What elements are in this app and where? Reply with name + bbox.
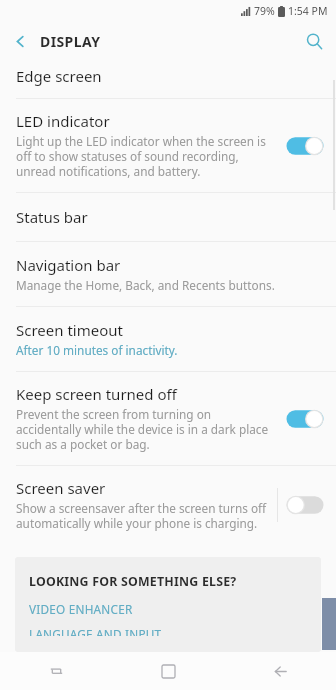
staticText: Status bar — [16, 207, 88, 227]
button[interactable]: Status bar — [0, 193, 336, 241]
staticText: DISPLAY — [40, 32, 101, 51]
staticText: Show a screensaver after the screen turn… — [16, 500, 269, 532]
button[interactable]: Back — [0, 22, 40, 60]
staticText: Edge screen — [16, 66, 102, 86]
button[interactable]: Keep screen turned off — [0, 372, 336, 465]
staticText: LED indicator — [16, 111, 110, 131]
button[interactable]: Edge screen — [0, 60, 336, 98]
staticText: Navigation bar — [16, 255, 121, 275]
button[interactable]: LED indicator — [0, 99, 336, 192]
staticText: 79% — [254, 4, 275, 18]
button[interactable]: Navigation bar — [0, 242, 336, 306]
button[interactable]: Search — [292, 22, 336, 60]
button[interactable]: LANGUAGE AND INPUT — [29, 626, 307, 636]
staticText: After 10 minutes of inactivity. — [16, 342, 178, 358]
button[interactable]: Recents — [0, 652, 112, 690]
staticText: Manage the Home, Back, and Recents butto… — [16, 277, 275, 293]
staticText: VIDEO ENHANCER — [29, 601, 133, 617]
staticText: 1:54 PM — [288, 4, 328, 18]
button[interactable]: Screen saver — [0, 466, 336, 544]
button[interactable]: VIDEO ENHANCER — [29, 601, 307, 617]
button[interactable]: Home — [112, 652, 224, 690]
staticText: Screen saver — [16, 478, 106, 498]
staticText: LOOKING FOR SOMETHING ELSE? — [29, 573, 237, 590]
button[interactable]: Screen timeout — [0, 307, 336, 371]
staticText: Light up the LED indicator when the scre… — [16, 133, 276, 180]
staticText: Prevent the screen from turning on accid… — [16, 406, 276, 453]
button[interactable]: Back — [224, 652, 336, 690]
staticText: LANGUAGE AND INPUT — [29, 626, 162, 636]
staticText: Keep screen turned off — [16, 384, 177, 404]
staticText: Screen timeout — [16, 320, 123, 340]
